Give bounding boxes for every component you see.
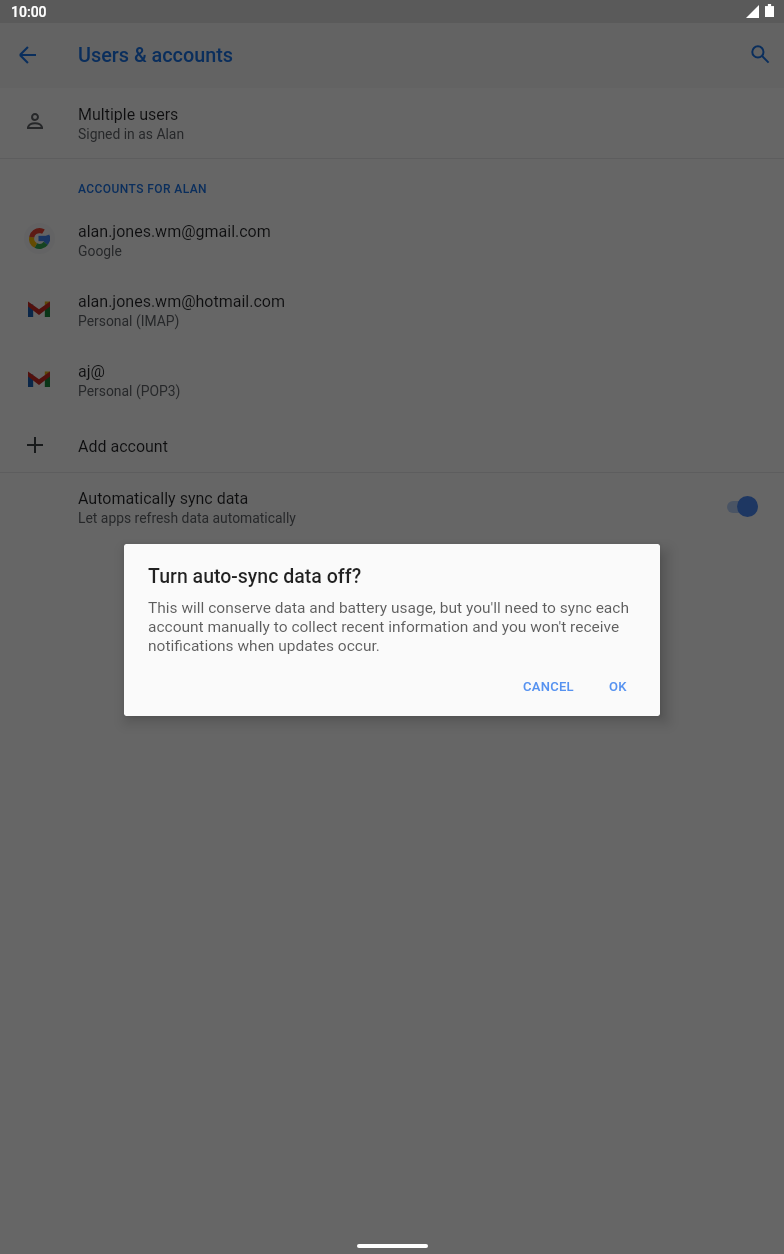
staticText: Personal (IMAP): [78, 313, 180, 329]
staticText: aj@: [78, 362, 105, 381]
staticText: Let apps refresh data automatically: [78, 510, 296, 526]
button[interactable]: Automatically sync data, on: [727, 496, 758, 517]
staticText: alan.jones.wm@gmail.com: [78, 222, 271, 241]
button[interactable]: OK: [597, 666, 638, 706]
staticText: Multiple users: [78, 105, 179, 124]
button[interactable]: alan.jones.wm@gmail.com: [0, 205, 784, 275]
staticText: Signed in as Alan: [78, 126, 185, 142]
staticText: Google: [78, 243, 122, 259]
button[interactable]: CANCEL: [511, 666, 586, 706]
staticText: This will conserve data and battery usag…: [148, 599, 640, 655]
staticText: Turn auto-sync data off?: [148, 565, 362, 588]
button[interactable]: Add account: [0, 415, 784, 472]
staticText: OK: [609, 679, 627, 694]
staticText: Personal (POP3): [78, 383, 181, 399]
staticText: CANCEL: [523, 679, 574, 694]
button[interactable]: Search: [737, 31, 784, 79]
button[interactable]: Multiple users: [0, 88, 784, 158]
staticText: Users & accounts: [78, 44, 234, 67]
button[interactable]: Automatically sync data: [0, 473, 784, 543]
staticText: alan.jones.wm@hotmail.com: [78, 292, 285, 311]
staticText: 10:00: [11, 4, 47, 20]
button[interactable]: Back: [3, 31, 51, 79]
staticText: Automatically sync data: [78, 489, 249, 508]
staticText: Add account: [78, 437, 168, 456]
button[interactable]: alan.jones.wm@hotmail.com: [0, 275, 784, 345]
button[interactable]: aj@: [0, 345, 784, 415]
staticText: ACCOUNTS FOR ALAN: [78, 182, 208, 196]
